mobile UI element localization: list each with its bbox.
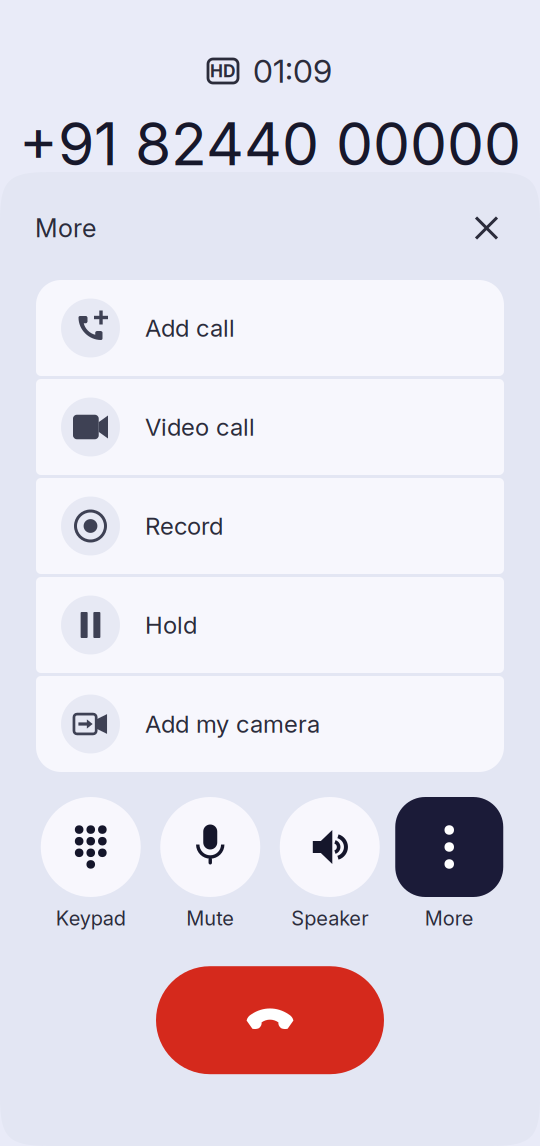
staticText: HD: [210, 60, 236, 81]
staticText: Keypad: [56, 906, 126, 930]
button[interactable]: Close: [465, 206, 508, 249]
button[interactable]: More: [389, 797, 509, 930]
staticText: +91 82440 00000: [19, 108, 521, 179]
button[interactable]: Mute: [150, 797, 270, 930]
button[interactable]: Keypad: [31, 797, 150, 930]
staticText: More: [35, 213, 96, 243]
staticText: Mute: [186, 906, 234, 930]
button[interactable]: End call: [156, 966, 384, 1074]
button[interactable]: Video call: [36, 379, 504, 475]
staticText: Video call: [145, 412, 255, 441]
staticText: Hold: [145, 610, 197, 639]
button[interactable]: Add call: [36, 280, 504, 376]
button[interactable]: Add my camera: [36, 676, 504, 772]
button[interactable]: Speaker: [270, 797, 389, 930]
staticText: Speaker: [291, 906, 368, 930]
staticText: More: [425, 906, 474, 930]
button[interactable]: Hold: [36, 577, 504, 673]
staticText: Record: [145, 511, 223, 540]
staticText: Add call: [145, 313, 235, 342]
staticText: 01:09: [253, 52, 332, 90]
button[interactable]: Record: [36, 478, 504, 574]
staticText: Add my camera: [145, 709, 320, 738]
